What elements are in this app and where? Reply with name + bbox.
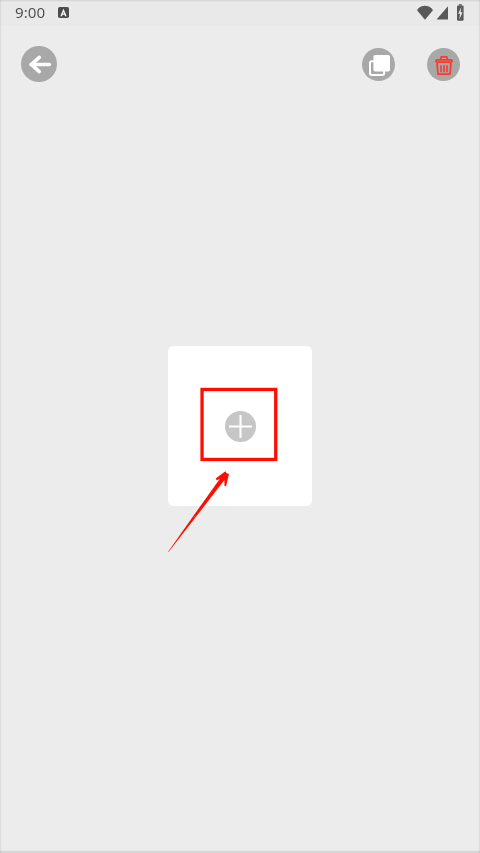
staticText: 9:00 [15, 2, 46, 23]
button[interactable]: Duplicate [362, 48, 395, 81]
button[interactable]: Back [21, 46, 57, 82]
button[interactable]: Add [225, 411, 256, 442]
button[interactable]: Delete [427, 48, 460, 81]
button[interactable]: Empty slot [168, 346, 312, 506]
